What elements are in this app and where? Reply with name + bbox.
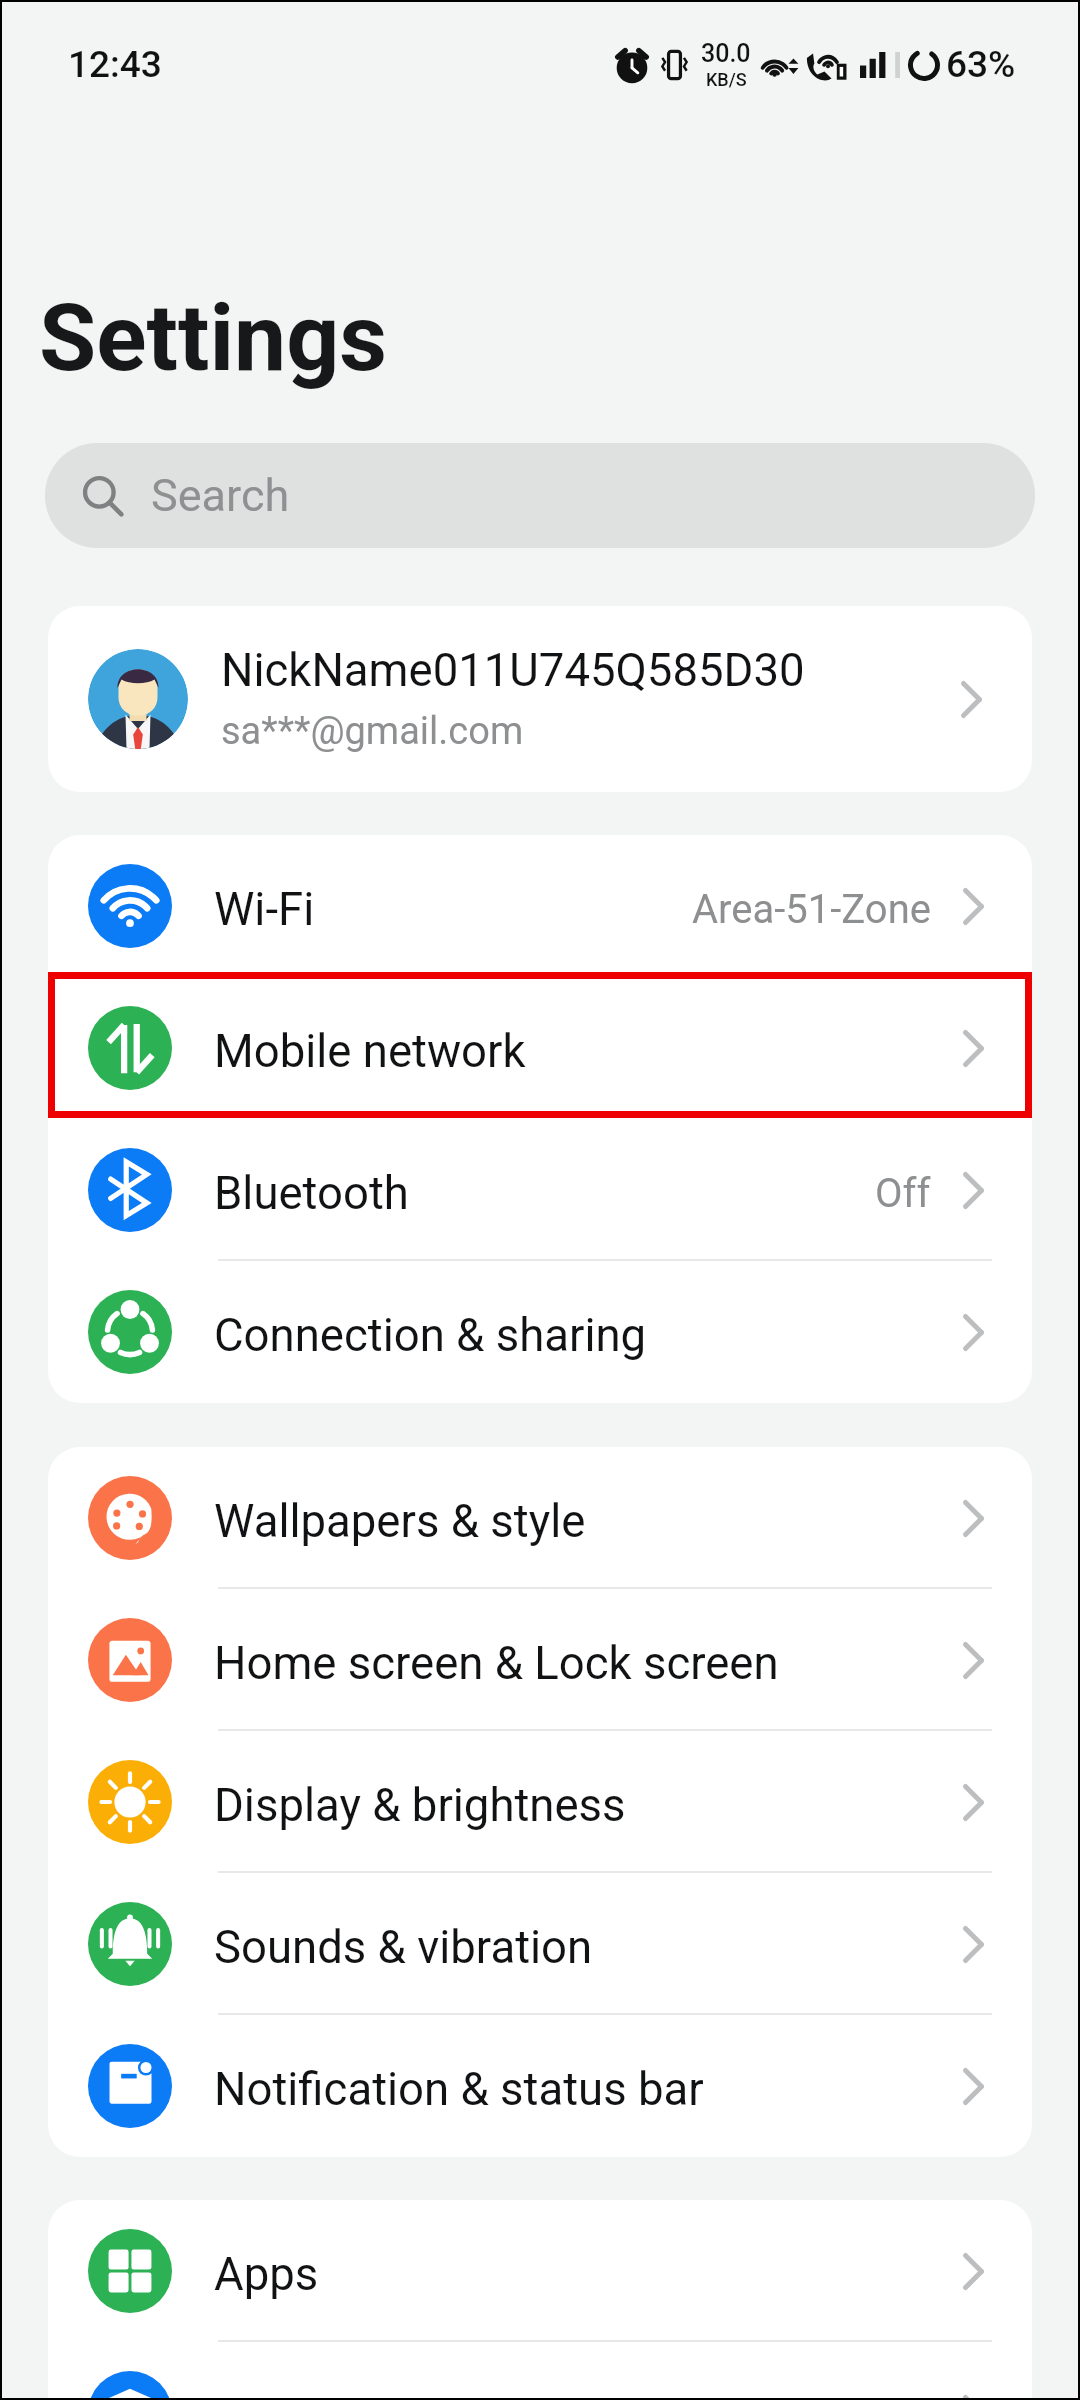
staticText: Off xyxy=(875,1170,931,1217)
staticText: Display & brightness xyxy=(214,1779,626,1832)
staticText: Mobile network xyxy=(214,1025,526,1078)
staticText: 63% xyxy=(946,43,1016,86)
button[interactable]: Notification & status bar xyxy=(48,2015,1032,2157)
staticText: NickName011U745Q585D30 xyxy=(221,644,805,697)
button[interactable]: Mobile network xyxy=(48,977,1032,1119)
staticText: Wallpapers & style xyxy=(214,1495,586,1548)
staticText: Connection & sharing xyxy=(214,1309,647,1362)
button[interactable]: Security xyxy=(48,2342,1032,2398)
button[interactable]: Connection & sharing xyxy=(48,1261,1032,1403)
staticText: Home screen & Lock screen xyxy=(214,1637,779,1690)
staticText: Settings xyxy=(39,284,388,393)
button[interactable]: Apps xyxy=(48,2200,1032,2342)
button[interactable]: Display & brightness xyxy=(48,1731,1032,1873)
staticText: Sounds & vibration xyxy=(214,1921,593,1974)
button[interactable]: Search settings xyxy=(45,443,1035,548)
button[interactable]: Sounds & vibration xyxy=(48,1873,1032,2015)
button[interactable]: Bluetooth xyxy=(48,1119,1032,1261)
button[interactable]: NickName011U745Q585D30 xyxy=(48,606,1032,792)
button[interactable]: Wi-Fi xyxy=(48,835,1032,977)
button[interactable]: Wallpapers & style xyxy=(48,1447,1032,1589)
button[interactable]: Home screen & Lock screen xyxy=(48,1589,1032,1731)
staticText: 30.0 xyxy=(701,39,751,68)
staticText: Bluetooth xyxy=(214,1167,409,1220)
staticText: Search xyxy=(151,469,290,522)
staticText: KB/S xyxy=(706,69,747,90)
staticText: Notification & status bar xyxy=(214,2063,704,2116)
staticText: Apps xyxy=(214,2248,319,2301)
staticText: Area-51-Zone xyxy=(692,886,931,933)
staticText: sa***@gmail.com xyxy=(221,709,524,754)
staticText: 12:43 xyxy=(68,43,162,86)
staticText: Wi-Fi xyxy=(214,883,315,936)
